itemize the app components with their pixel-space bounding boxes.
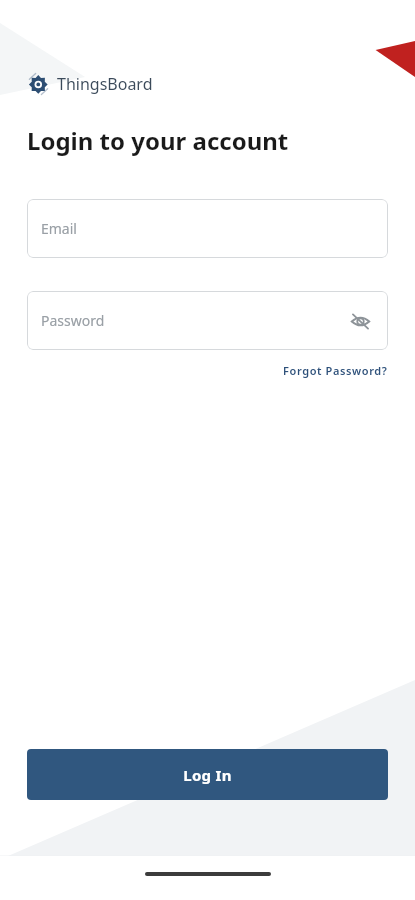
button[interactable]: Password <box>27 291 388 350</box>
button[interactable]: ThingsBoard <box>27 72 153 96</box>
staticText: Login to your account <box>27 124 289 157</box>
button[interactable]: Email <box>27 199 388 258</box>
staticText: ThingsBoard <box>57 73 153 95</box>
staticText: Forgot Password? <box>283 363 388 378</box>
button[interactable]: Toggle password visibility <box>344 305 376 337</box>
button[interactable]: Log In <box>27 749 388 800</box>
button[interactable]: Forgot Password? <box>283 363 388 378</box>
staticText: Email <box>41 219 77 238</box>
staticText: Log In <box>183 765 232 785</box>
staticText: Password <box>41 311 105 330</box>
